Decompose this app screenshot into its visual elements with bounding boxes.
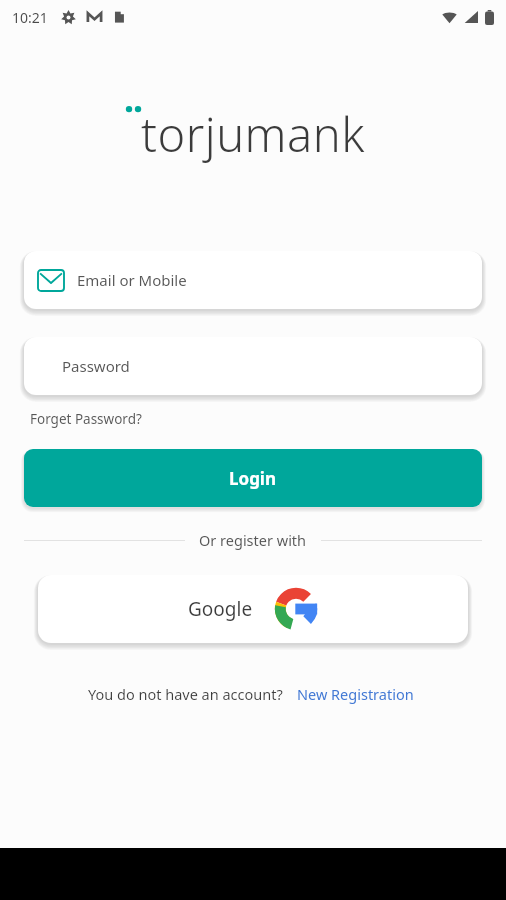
button[interactable]: Password bbox=[24, 337, 482, 395]
button[interactable]: Google bbox=[38, 575, 468, 643]
button[interactable]: Email bbox=[24, 251, 482, 309]
button[interactable]: Forget Password? bbox=[26, 406, 146, 432]
staticText: 10:21 bbox=[12, 8, 48, 27]
staticText: Email or Mobile bbox=[77, 270, 187, 290]
staticText: Password bbox=[62, 356, 130, 376]
staticText: New Registration bbox=[297, 684, 414, 704]
other: Sign in with Google bbox=[273, 586, 319, 632]
staticText: Login bbox=[229, 467, 277, 490]
button[interactable]: New Registration bbox=[293, 680, 418, 708]
staticText: Or register with bbox=[199, 530, 307, 550]
other: Email bbox=[38, 270, 64, 291]
staticText: You do not have an account? bbox=[88, 684, 283, 704]
staticText: torjumank bbox=[141, 102, 365, 166]
staticText: Forget Password? bbox=[30, 410, 142, 428]
button[interactable]: Login bbox=[24, 449, 482, 507]
staticText: Google bbox=[188, 596, 253, 622]
